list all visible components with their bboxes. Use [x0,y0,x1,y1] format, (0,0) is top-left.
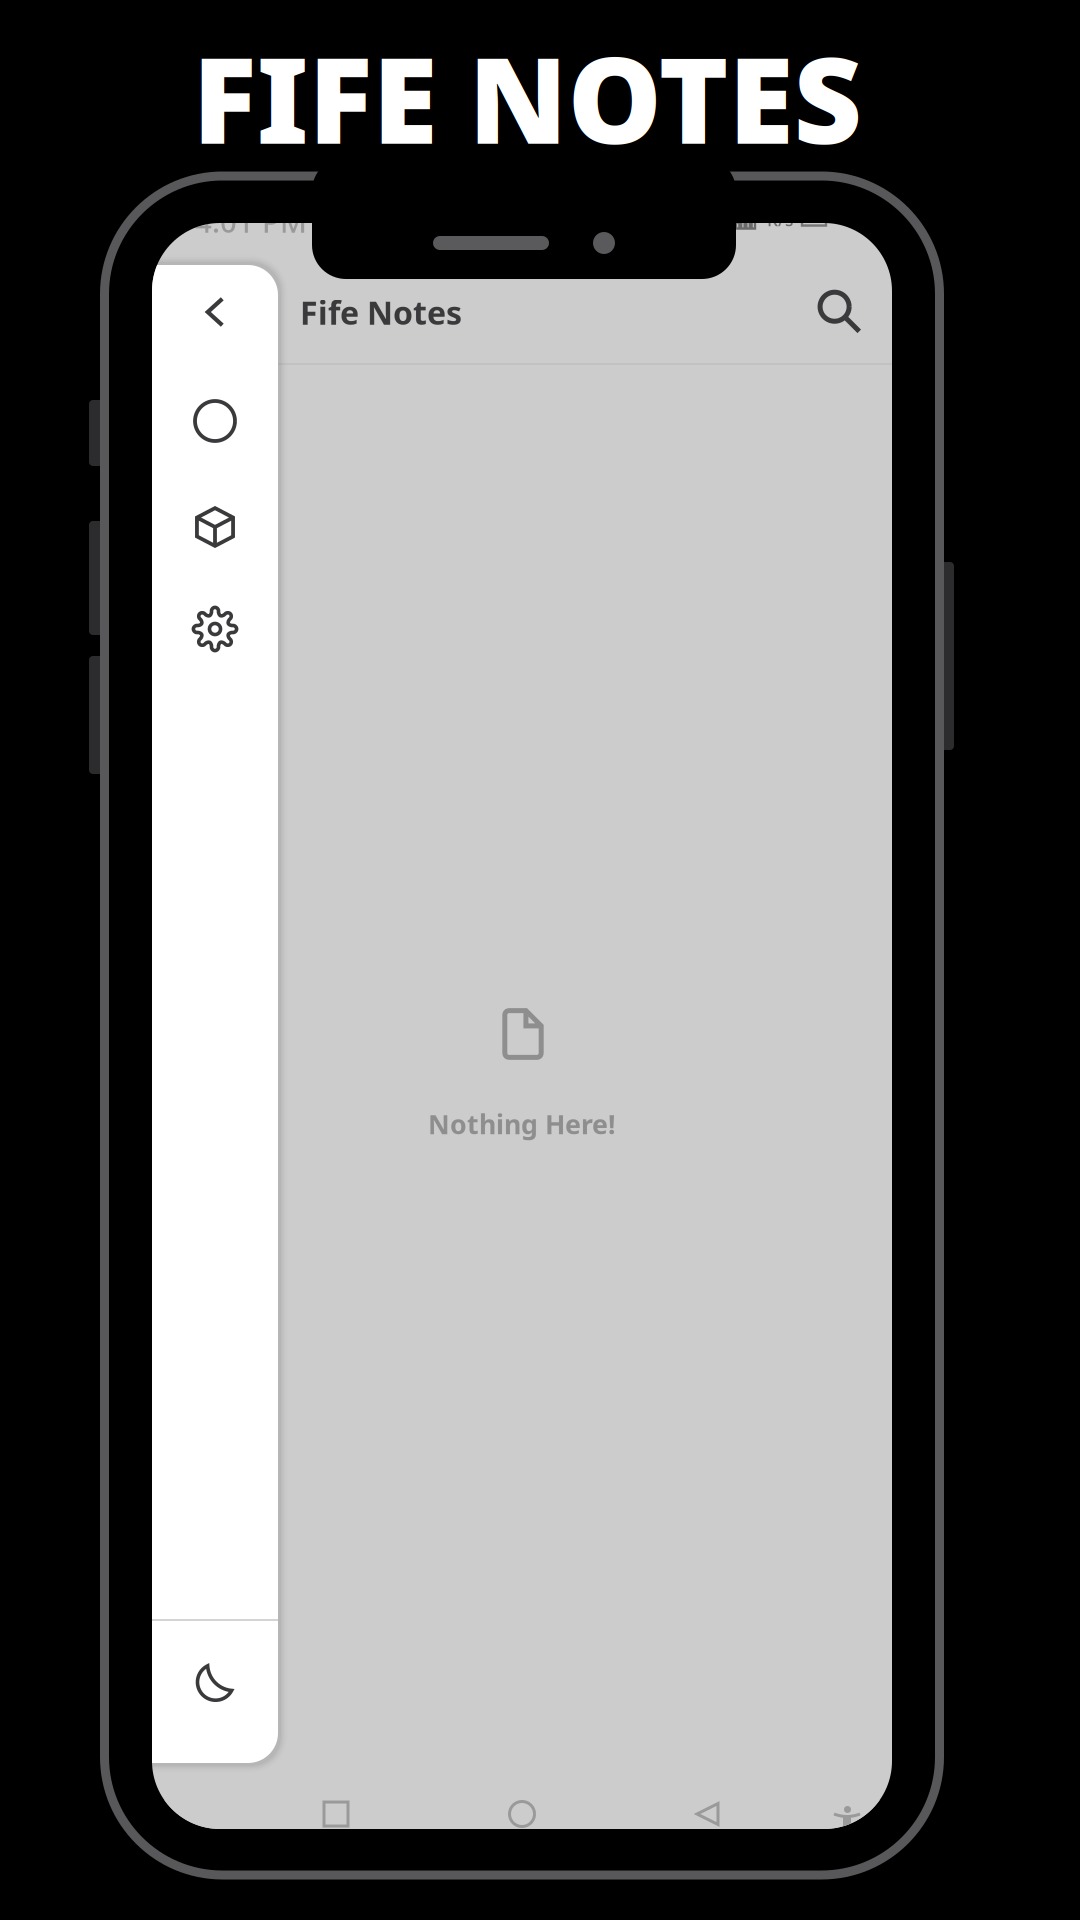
button[interactable]: Close menu [152,269,278,355]
staticText: FIFE NOTES [192,19,861,177]
button[interactable]: Notes [152,381,278,461]
staticText: 4:01 PM [195,202,307,241]
button[interactable]: Home [508,1800,536,1828]
button[interactable]: Settings [152,589,278,669]
button[interactable]: Recent apps [322,1800,350,1828]
button[interactable]: Back [694,1800,722,1828]
button[interactable]: Archive [152,487,278,567]
staticText: Nothing Here! [428,1106,616,1142]
button[interactable]: Dark mode [154,1630,280,1730]
staticText: Fife Notes [300,291,462,333]
staticText: K/s [767,208,793,231]
button[interactable]: Search [804,277,874,347]
button[interactable]: Accessibility [832,1802,862,1832]
